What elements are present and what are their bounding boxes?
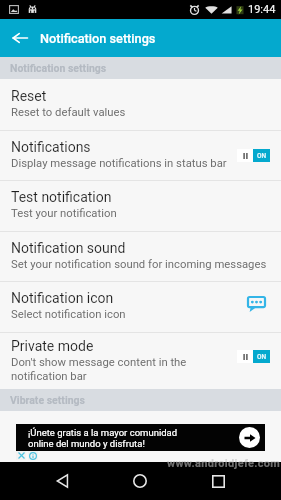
button[interactable]: Toggle on (237, 149, 270, 162)
button[interactable]: Back (23, 462, 101, 500)
button[interactable]: Ad info (28, 451, 38, 460)
button[interactable]: Notifications (0, 131, 281, 180)
staticText: Don't show message content in the notifi… (11, 356, 187, 382)
staticText: Notification settings (40, 31, 156, 46)
button[interactable]: Advertisement (16, 424, 265, 451)
button[interactable]: Notification sound (0, 232, 281, 281)
staticText: Notification sound (11, 240, 126, 256)
staticText: www.androidjefe.com (167, 457, 281, 470)
staticText: Reset to default values (11, 106, 126, 119)
button[interactable]: Test notification (0, 181, 281, 231)
staticText: ON (257, 353, 267, 361)
staticText: Test your notification (11, 207, 117, 220)
staticText: Display message notifications in status … (11, 157, 227, 170)
button[interactable]: Toggle on (237, 350, 270, 363)
button[interactable]: Reset (0, 79, 281, 130)
button[interactable]: Close ad (16, 451, 26, 460)
button[interactable]: Recent apps (179, 462, 257, 500)
staticText: 19:44 (248, 3, 276, 16)
staticText: Notifications (11, 139, 91, 155)
staticText: Select notification icon (11, 308, 126, 321)
button[interactable]: Home (101, 462, 179, 500)
staticText: Notification settings (10, 62, 107, 74)
staticText: ON (257, 152, 267, 160)
staticText: Test notification (11, 189, 112, 205)
staticText: Notification icon (11, 290, 114, 306)
button[interactable]: Notification icon (0, 282, 281, 332)
staticText: ¡Únete gratis a la mayor comunidad onlin… (28, 427, 239, 449)
staticText: Private mode (11, 338, 94, 354)
button[interactable]: Navigate up (0, 19, 40, 57)
button[interactable]: Select notification icon (246, 295, 270, 319)
staticText: Set your notification sound for incoming… (11, 258, 267, 271)
button[interactable]: Private mode (0, 333, 281, 389)
staticText: Reset (11, 88, 47, 104)
staticText: Vibrate settings (10, 394, 85, 406)
